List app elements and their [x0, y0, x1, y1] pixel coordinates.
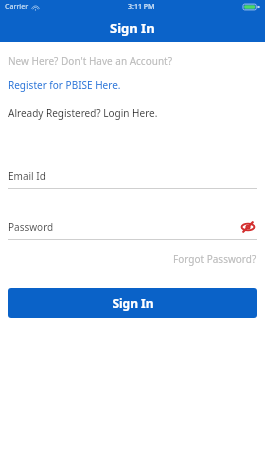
button[interactable]: Password: [8, 215, 257, 239]
staticText: New Here? Don't Have an Account?: [8, 54, 173, 68]
staticText: Carrier: [5, 2, 29, 12]
button[interactable]: Show password: [239, 218, 257, 236]
staticText: Already Registered? Login Here.: [8, 106, 158, 120]
staticText: Forgot Password?: [173, 252, 257, 266]
button[interactable]: Email Id: [8, 164, 257, 189]
staticText: 3:11 PM: [128, 2, 155, 12]
staticText: Password: [8, 220, 239, 234]
staticText: Email Id: [8, 169, 46, 183]
staticText: Sign In: [112, 295, 154, 311]
button[interactable]: Register for PBISE Here.: [8, 78, 121, 92]
button[interactable]: Sign In: [8, 288, 257, 318]
staticText: Sign In: [110, 19, 155, 37]
button[interactable]: Forgot Password?: [173, 252, 257, 266]
staticText: Register for PBISE Here.: [8, 78, 121, 92]
